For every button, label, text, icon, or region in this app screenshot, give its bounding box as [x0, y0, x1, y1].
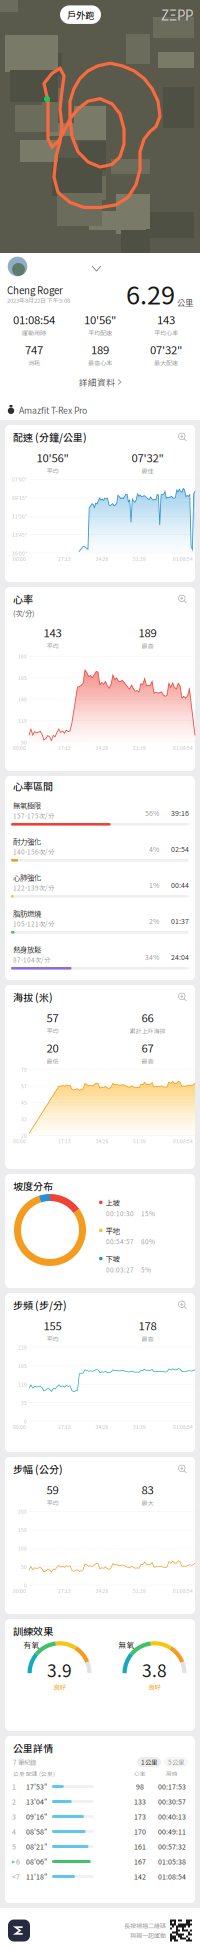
button[interactable]: 5公里 — [164, 1757, 188, 1767]
staticText: Cheng Roger — [7, 283, 63, 297]
staticText: 00:00 — [13, 1138, 26, 1145]
staticText: 1公里 — [141, 1757, 157, 1767]
staticText: 34:26 — [95, 1587, 108, 1594]
staticText: 34:26 — [95, 1138, 108, 1145]
staticText: 配速 (分鐘/公里) — [13, 430, 87, 444]
staticText: 00:00 — [13, 1423, 26, 1430]
button[interactable]: Expand chart — [176, 1298, 189, 1311]
staticText: 161 — [134, 1841, 146, 1851]
staticText: 3.8 — [142, 1657, 167, 1682]
staticText: 消耗 — [28, 358, 40, 367]
staticText: <7 — [12, 1871, 20, 1881]
staticText: 步頻 (步/分) — [13, 1298, 67, 1312]
staticText: 33 — [21, 1116, 27, 1123]
staticText: 34% — [145, 952, 159, 962]
staticText: 步幅 (公分) — [13, 1462, 63, 1476]
staticText: 5公里 — [168, 1757, 184, 1767]
staticText: 01:08:54 — [173, 555, 193, 562]
staticText: 4 — [12, 1826, 16, 1836]
staticText: 脂肪燃燒 — [13, 908, 41, 919]
staticText: 189 — [91, 341, 109, 357]
staticText: 00:54:57 — [106, 1237, 134, 1246]
staticText: 20 — [46, 1039, 58, 1056]
staticText: ▸ — [12, 1858, 15, 1865]
staticText: 最高 — [141, 1334, 153, 1343]
button[interactable]: 1公里 — [137, 1757, 161, 1767]
staticText: 有氧 — [23, 1639, 39, 1650]
staticText: 115 — [18, 717, 27, 724]
staticText: 耐力強化 — [13, 836, 41, 847]
staticText: 用時 — [166, 1769, 178, 1777]
staticText: 5 — [12, 1841, 16, 1851]
staticText: 累計上升海拔 — [129, 1026, 165, 1035]
staticText: 57 — [21, 1083, 27, 1090]
button[interactable]: Expand chart — [176, 430, 189, 443]
staticText: 173 — [134, 1811, 146, 1821]
staticText: 170 — [134, 1826, 146, 1836]
staticText: 143 — [43, 624, 61, 640]
staticText: 83 — [141, 1481, 153, 1497]
staticText: 01:05:38 — [158, 1856, 186, 1866]
staticText: 最低 — [46, 1057, 58, 1066]
button[interactable]: 詳細資料 — [0, 373, 200, 391]
staticText: 01:37 — [171, 916, 189, 926]
staticText: 17:13 — [58, 1423, 71, 1430]
staticText: 100 — [18, 1545, 27, 1552]
staticText: 17:13 — [58, 1587, 71, 1594]
staticText: 戶外跑 — [67, 8, 94, 21]
staticText: 00:57:32 — [158, 1841, 186, 1851]
staticText: 57 — [46, 1009, 58, 1025]
staticText: 10'56" — [36, 449, 68, 465]
staticText: 09'15" — [12, 494, 27, 501]
staticText: 3.9 — [47, 1657, 72, 1682]
button[interactable]: Collapse — [88, 262, 105, 275]
staticText: 98 — [136, 1781, 144, 1791]
staticText: 87-104次/分 — [13, 955, 50, 964]
staticText: 67 — [141, 1039, 153, 1056]
staticText: 165 — [18, 674, 27, 681]
staticText: 上坡 — [106, 1197, 120, 1208]
staticText: 平均 — [46, 466, 58, 475]
button[interactable]: Expand chart — [176, 1462, 189, 1475]
button[interactable]: Expand chart — [176, 592, 189, 605]
button[interactable]: Expand chart — [176, 990, 189, 1003]
staticText: 4% — [149, 844, 159, 854]
staticText: 90 — [21, 739, 27, 746]
staticText: 122-139次/分 — [13, 883, 54, 892]
staticText: 45 — [21, 1099, 27, 1106]
staticText: 詳細資料 — [79, 376, 115, 388]
staticText: 公里詳情 — [13, 1741, 53, 1755]
staticText: 09'16" — [26, 1811, 47, 1821]
staticText: 00:44 — [171, 880, 189, 890]
staticText: 2% — [149, 916, 159, 926]
staticText: 良好 — [53, 1682, 65, 1692]
staticText: 01:08:54 — [158, 1871, 186, 1881]
staticText: 16'00" — [12, 550, 27, 557]
staticText: 無氧 — [118, 1639, 134, 1650]
staticText: 17:13 — [58, 555, 71, 562]
staticText: 39:16 — [171, 808, 189, 818]
staticText: 11'30" — [12, 513, 27, 520]
staticText: 07'00" — [12, 476, 27, 483]
staticText: 66 — [141, 1009, 153, 1025]
staticText: 08'58" — [26, 1826, 47, 1836]
staticText: 最高心率 — [88, 358, 112, 367]
staticText: 熱身放鬆 — [13, 944, 41, 955]
staticText: 142 — [134, 1871, 146, 1881]
staticText: 13'04" — [26, 1796, 47, 1806]
staticText: ZΞPP — [161, 5, 193, 24]
staticText: 34:26 — [95, 744, 108, 751]
staticText: 747 — [25, 341, 43, 357]
staticText: 平地 — [106, 1225, 120, 1236]
staticText: 00:17:53 — [158, 1781, 186, 1791]
staticText: 00:40:13 — [158, 1811, 186, 1821]
staticText: 7 筆紀錄 — [13, 1757, 36, 1767]
staticText: 51:39 — [133, 555, 146, 562]
staticText: 165 — [18, 1362, 27, 1369]
staticText: 平均 — [46, 1026, 58, 1035]
staticText: 公里 — [177, 296, 193, 309]
staticText: 良好 — [148, 1682, 160, 1692]
staticText: Amazfit T-Rex Pro — [19, 404, 87, 416]
staticText: 00:00 — [13, 744, 26, 751]
staticText: 平均 — [46, 1334, 58, 1343]
